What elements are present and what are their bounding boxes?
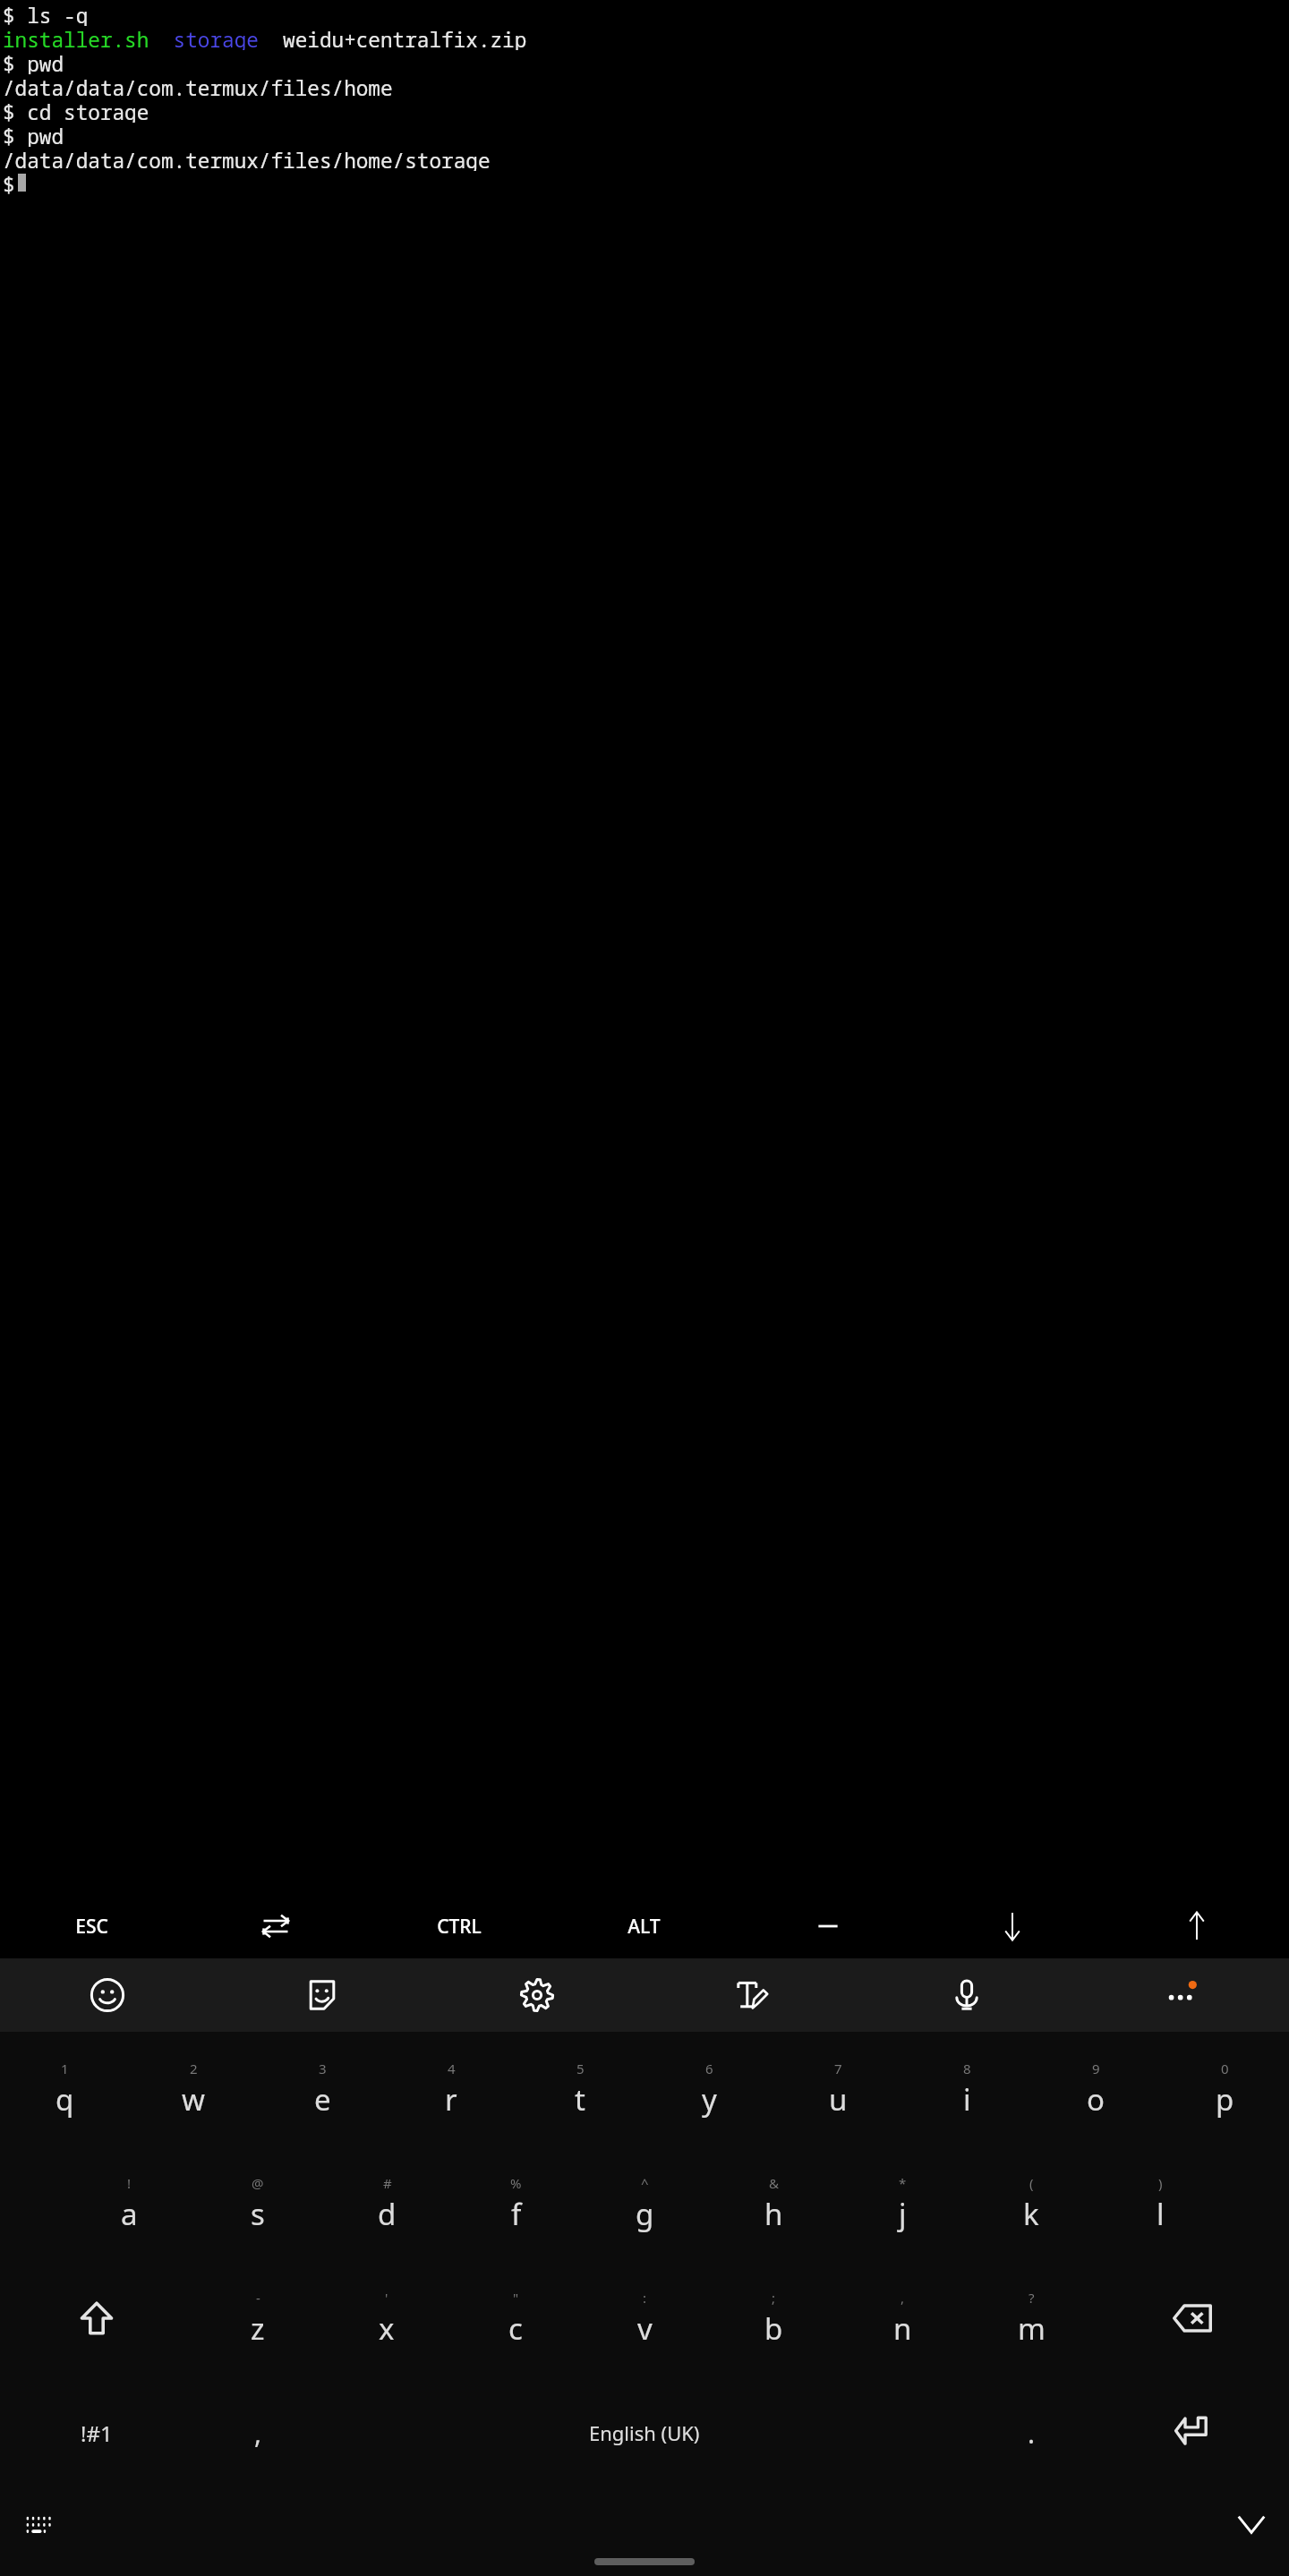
staticText: a — [121, 2194, 138, 2234]
button[interactable]: * — [838, 2146, 967, 2261]
button[interactable]: More options — [1074, 1958, 1289, 2032]
button[interactable]: 3 — [258, 2032, 387, 2146]
button[interactable]: Text editing — [644, 1958, 859, 2032]
staticText: ? — [1029, 2289, 1035, 2307]
staticText: /data/data/com.termux/files/home — [3, 74, 393, 98]
staticText: l — [1157, 2194, 1165, 2234]
staticText: % — [510, 2174, 522, 2192]
staticText: 9 — [1092, 2060, 1100, 2077]
button[interactable]: 6 — [644, 2032, 773, 2146]
button[interactable]: ) — [1096, 2146, 1225, 2261]
button[interactable]: Hide keyboard — [1226, 2499, 1276, 2549]
staticText: ( — [1029, 2174, 1034, 2192]
staticText: o — [1087, 2079, 1105, 2120]
staticText: n — [893, 2308, 912, 2349]
staticText: i — [963, 2079, 971, 2120]
staticText: # — [383, 2174, 392, 2192]
button[interactable]: Stickers — [215, 1958, 430, 2032]
button[interactable]: . — [967, 2376, 1096, 2490]
staticText: t — [575, 2079, 585, 2120]
button[interactable]: Emoji — [0, 1958, 215, 2032]
staticText: . — [1028, 2415, 1036, 2452]
button[interactable]: $ ls -q — [0, 0, 1289, 1894]
button[interactable]: Backspace — [1096, 2261, 1289, 2376]
staticText: , — [254, 2415, 262, 2452]
staticText: ESC — [75, 1914, 108, 1940]
button[interactable]: ^ — [580, 2146, 709, 2261]
staticText: 2 — [190, 2060, 198, 2077]
button[interactable]: CTRL — [367, 1894, 551, 1958]
button[interactable]: - — [193, 2261, 322, 2376]
staticText: j — [899, 2194, 907, 2234]
button[interactable]: 8 — [902, 2032, 1031, 2146]
staticText: s — [251, 2194, 265, 2234]
staticText: z — [251, 2308, 265, 2349]
staticText: @ — [252, 2174, 264, 2192]
staticText: b — [764, 2308, 783, 2349]
staticText: r — [445, 2079, 457, 2120]
staticText: - — [256, 2289, 260, 2307]
staticText: g — [636, 2194, 654, 2234]
staticText: h — [764, 2194, 783, 2234]
staticText: q — [55, 2079, 74, 2120]
staticText: ) — [1158, 2174, 1163, 2192]
button[interactable]: 1 — [0, 2032, 129, 2146]
button[interactable]: , — [838, 2261, 967, 2376]
button[interactable]: 9 — [1031, 2032, 1160, 2146]
button[interactable]: ! — [64, 2146, 193, 2261]
staticText: u — [829, 2079, 848, 2120]
staticText: m — [1018, 2308, 1046, 2349]
staticText: 5 — [576, 2060, 585, 2077]
staticText: f — [511, 2194, 522, 2234]
staticText: c — [508, 2308, 523, 2349]
button[interactable]: # — [322, 2146, 451, 2261]
staticText: x — [379, 2308, 395, 2349]
button[interactable]: Arrow up — [1105, 1894, 1289, 1958]
button[interactable]: , — [193, 2376, 322, 2490]
button[interactable]: Shift — [0, 2261, 193, 2376]
staticText: /data/data/com.termux/files/home/storage — [3, 147, 491, 171]
staticText: $ pwd — [3, 50, 64, 74]
button[interactable]: Settings — [430, 1958, 644, 2032]
staticText: y — [702, 2079, 717, 2120]
button[interactable]: ( — [967, 2146, 1096, 2261]
staticText: p — [1216, 2079, 1234, 2120]
button[interactable]: : — [580, 2261, 709, 2376]
staticText: CTRL — [437, 1914, 482, 1940]
button[interactable]: Arrow down — [920, 1894, 1105, 1958]
button[interactable]: ? — [967, 2261, 1096, 2376]
staticText: e — [314, 2079, 331, 2120]
staticText: ' — [385, 2289, 388, 2307]
button[interactable]: ALT — [551, 1894, 736, 1958]
button[interactable]: ' — [322, 2261, 451, 2376]
staticText: installer.sh storage weidu+centralfix.zi… — [3, 26, 527, 50]
button[interactable]: Switch keyboard — [13, 2499, 63, 2549]
button[interactable]: Minus — [736, 1894, 920, 1958]
button[interactable]: 0 — [1160, 2032, 1289, 2146]
button[interactable]: ESC — [0, 1894, 184, 1958]
button[interactable]: Voice input — [859, 1958, 1074, 2032]
staticText: ALT — [627, 1914, 661, 1940]
button[interactable]: ; — [709, 2261, 838, 2376]
staticText: & — [769, 2174, 779, 2192]
staticText: !#1 — [81, 2418, 113, 2448]
staticText: 4 — [448, 2060, 456, 2077]
staticText: 8 — [963, 2060, 971, 2077]
button[interactable]: English (UK) — [322, 2376, 967, 2490]
button[interactable]: 7 — [773, 2032, 902, 2146]
button[interactable]: Enter — [1096, 2376, 1289, 2490]
button[interactable]: Tab — [184, 1894, 367, 1958]
button[interactable]: & — [709, 2146, 838, 2261]
staticText: $ pwd — [3, 123, 64, 147]
button[interactable]: 4 — [387, 2032, 516, 2146]
button[interactable]: 2 — [129, 2032, 258, 2146]
staticText: " — [513, 2289, 519, 2307]
button[interactable]: " — [451, 2261, 580, 2376]
staticText: 7 — [834, 2060, 842, 2077]
button[interactable]: % — [451, 2146, 580, 2261]
staticText: 3 — [319, 2060, 327, 2077]
button[interactable]: !#1 — [0, 2376, 193, 2490]
staticText: v — [637, 2308, 653, 2349]
button[interactable]: @ — [193, 2146, 322, 2261]
button[interactable]: 5 — [516, 2032, 644, 2146]
